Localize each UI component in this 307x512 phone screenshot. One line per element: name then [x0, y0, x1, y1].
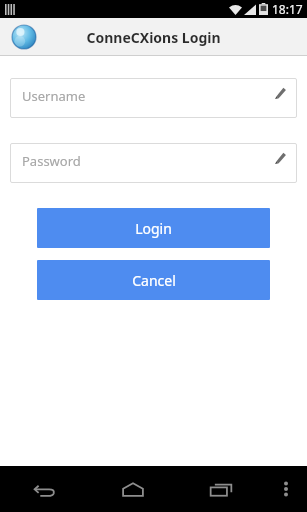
button[interactable]: Username	[10, 78, 297, 118]
button[interactable]: Cancel	[37, 260, 270, 300]
staticText: ConneCXions Login	[86, 28, 221, 47]
button[interactable]: Password	[10, 143, 297, 183]
staticText: Username	[22, 87, 86, 105]
other: Edit	[274, 151, 287, 164]
staticText: Cancel	[132, 271, 176, 290]
button[interactable]: Home	[89, 466, 177, 512]
button[interactable]: Recent apps	[177, 466, 265, 512]
staticText: 18:17	[272, 1, 303, 17]
other: Edit	[274, 86, 287, 99]
button[interactable]: Back	[0, 466, 89, 512]
staticText: Password	[22, 152, 81, 170]
button[interactable]: Login	[37, 208, 270, 248]
button[interactable]: More options	[265, 466, 307, 512]
staticText: Login	[135, 219, 172, 238]
